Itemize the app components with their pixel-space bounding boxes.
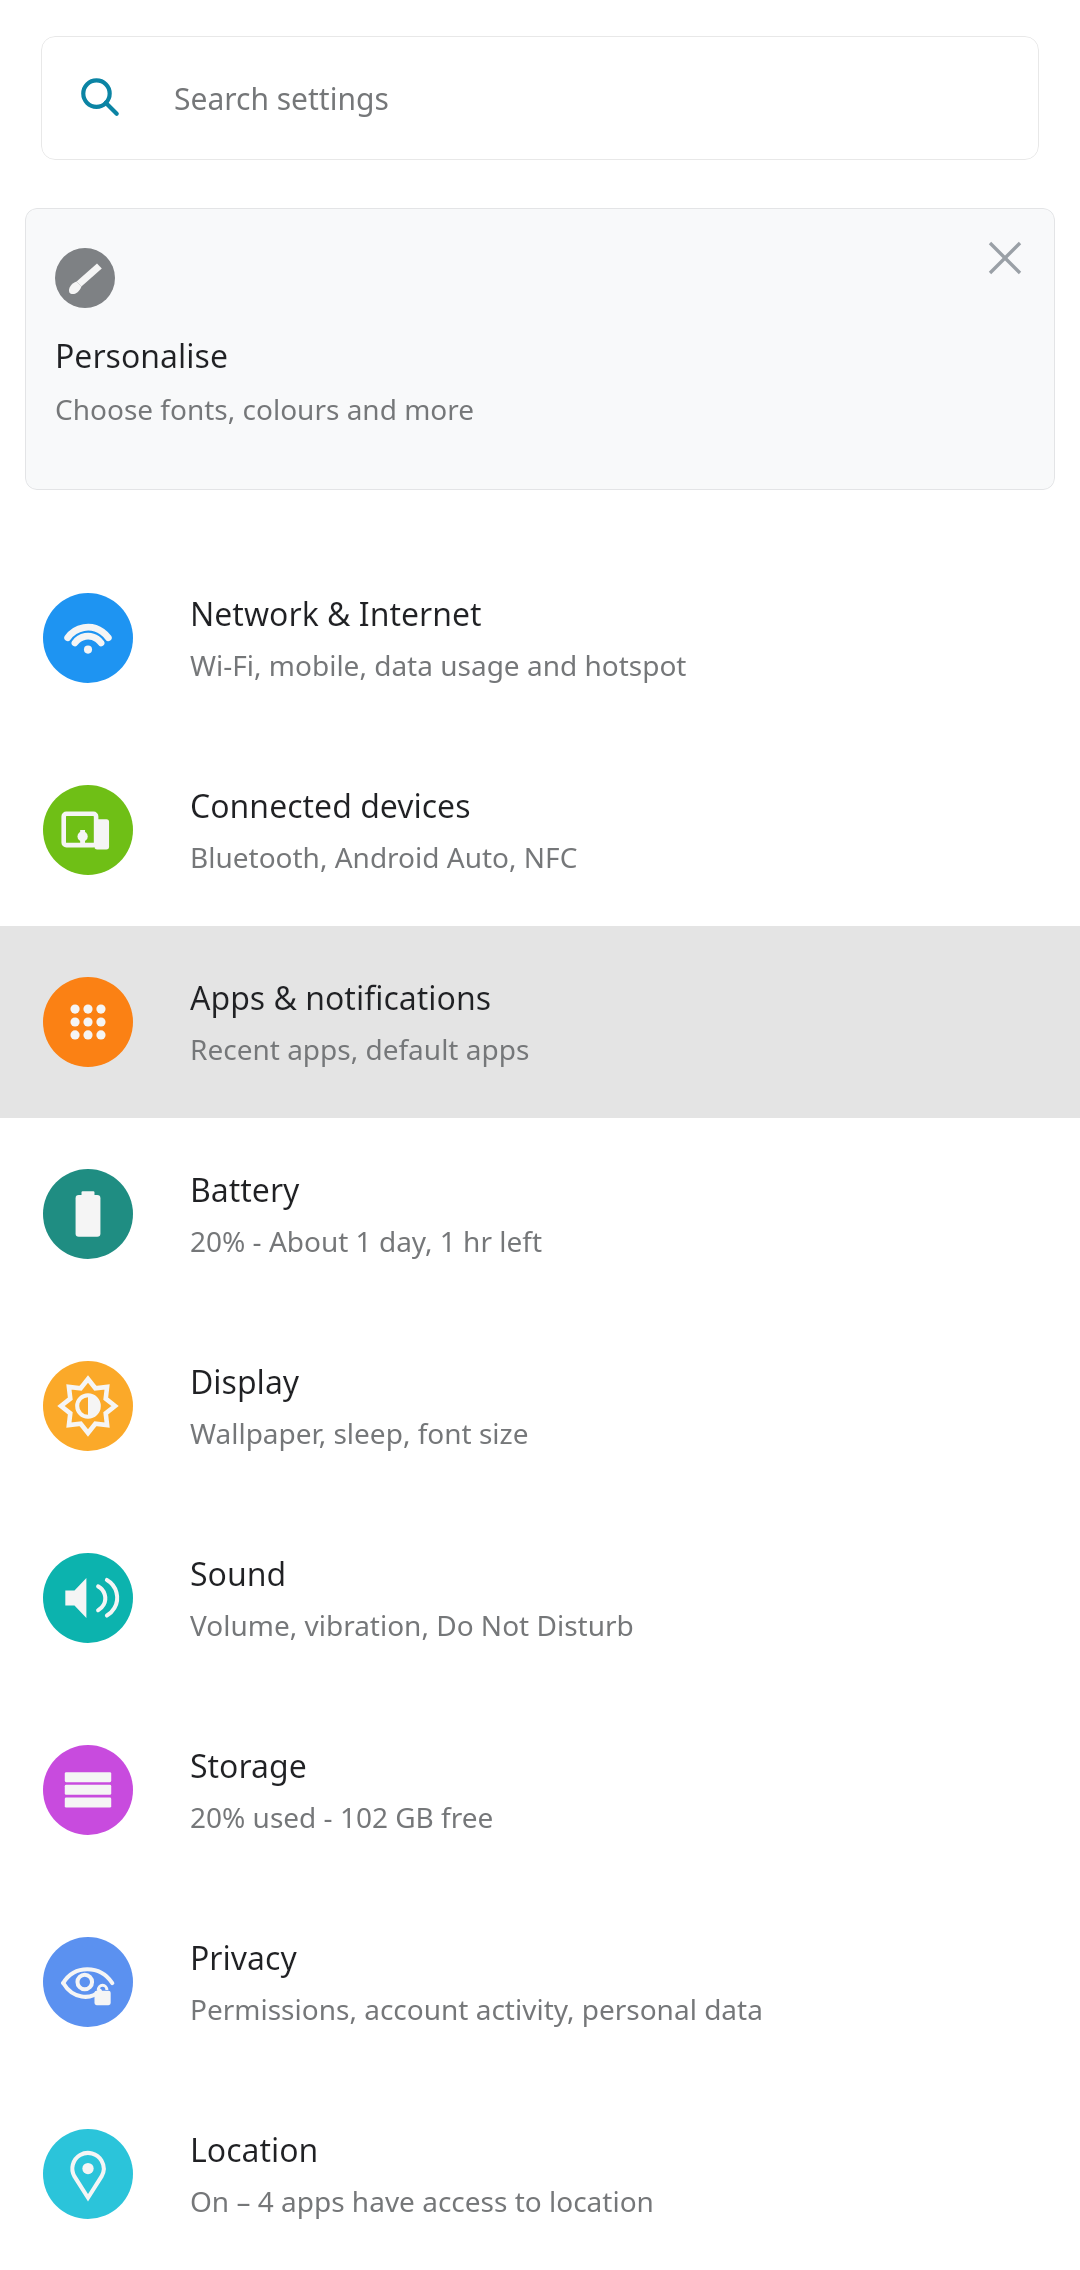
staticText: Apps & notifications: [190, 976, 491, 1020]
staticText: Storage: [190, 1744, 307, 1788]
staticText: Location: [190, 2128, 319, 2172]
button[interactable]: Battery: [0, 1118, 1080, 1310]
staticText: Sound: [190, 1552, 287, 1596]
staticText: 20% used - 102 GB free: [190, 1798, 494, 1836]
button[interactable]: Personalise: [25, 208, 1055, 490]
staticText: 20% - About 1 day, 1 hr left: [190, 1222, 542, 1260]
staticText: Volume, vibration, Do Not Disturb: [190, 1606, 634, 1644]
button[interactable]: Network & Internet: [0, 542, 1080, 734]
staticText: Search settings: [174, 78, 389, 119]
staticText: Battery: [190, 1168, 300, 1212]
button[interactable]: Dismiss: [977, 230, 1033, 286]
staticText: On – 4 apps have access to location: [190, 2182, 654, 2220]
staticText: Network & Internet: [190, 592, 482, 636]
staticText: Wallpaper, sleep, font size: [190, 1414, 529, 1452]
staticText: Choose fonts, colours and more: [55, 390, 475, 428]
staticText: Connected devices: [190, 784, 471, 828]
button[interactable]: Apps & notifications: [0, 926, 1080, 1118]
button[interactable]: Storage: [0, 1694, 1080, 1886]
staticText: Recent apps, default apps: [190, 1030, 530, 1068]
button[interactable]: Display: [0, 1310, 1080, 1502]
staticText: Bluetooth, Android Auto, NFC: [190, 838, 578, 876]
button[interactable]: Search settings: [41, 36, 1039, 160]
button[interactable]: Sound: [0, 1502, 1080, 1694]
staticText: Wi-Fi, mobile, data usage and hotspot: [190, 646, 687, 684]
staticText: Display: [190, 1360, 300, 1404]
staticText: Personalise: [55, 334, 228, 378]
staticText: Permissions, account activity, personal …: [190, 1990, 763, 2028]
button[interactable]: Connected devices: [0, 734, 1080, 926]
button[interactable]: Privacy: [0, 1886, 1080, 2078]
button[interactable]: Location: [0, 2078, 1080, 2270]
staticText: Privacy: [190, 1936, 297, 1980]
